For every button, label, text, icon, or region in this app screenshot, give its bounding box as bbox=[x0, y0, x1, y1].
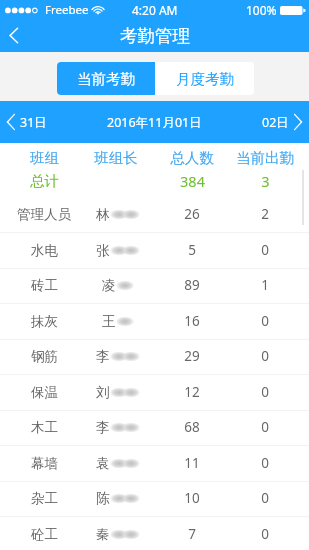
staticText: 管理人员 bbox=[17, 206, 71, 223]
staticText: 4:20 AM bbox=[132, 2, 178, 18]
staticText: 89 bbox=[184, 276, 200, 294]
staticText: 秦 bbox=[96, 526, 110, 543]
button[interactable] bbox=[0, 303, 309, 339]
button[interactable] bbox=[0, 410, 309, 446]
staticText: 考勤管理 bbox=[120, 25, 190, 47]
staticText: Freebee bbox=[45, 2, 89, 18]
staticText: 0 bbox=[261, 525, 269, 543]
staticText: 张 bbox=[96, 242, 110, 259]
staticText: 袁 bbox=[96, 455, 110, 472]
button[interactable]: 月度考勤 bbox=[155, 62, 254, 95]
staticText: 0 bbox=[261, 347, 269, 365]
button[interactable] bbox=[0, 516, 309, 550]
staticText: 11 bbox=[184, 454, 200, 472]
staticText: 抹灰 bbox=[31, 313, 58, 330]
staticText: 凌 bbox=[102, 277, 116, 294]
staticText: 2 bbox=[261, 205, 269, 223]
staticText: 0 bbox=[261, 418, 269, 436]
staticText: 钢筋 bbox=[31, 348, 58, 365]
staticText: 砖工 bbox=[31, 277, 58, 294]
staticText: 3 bbox=[261, 171, 270, 191]
button[interactable] bbox=[0, 374, 309, 410]
staticText: 16 bbox=[184, 312, 200, 330]
staticText: 0 bbox=[261, 383, 269, 401]
staticText: 26 bbox=[184, 205, 200, 223]
staticText: 陈 bbox=[96, 490, 110, 507]
staticText: 当前出勤 bbox=[236, 149, 294, 167]
staticText: 68 bbox=[184, 418, 200, 436]
button[interactable] bbox=[0, 268, 309, 304]
button[interactable] bbox=[0, 197, 309, 233]
staticText: 班组长 bbox=[94, 149, 138, 167]
staticText: 1 bbox=[261, 276, 269, 294]
staticText: 5 bbox=[188, 241, 196, 259]
staticText: 100% bbox=[246, 2, 277, 18]
staticText: 0 bbox=[261, 454, 269, 472]
staticText: 杂工 bbox=[31, 490, 58, 507]
staticText: 刘 bbox=[96, 384, 110, 401]
staticText: 7 bbox=[188, 525, 196, 543]
button[interactable] bbox=[0, 481, 309, 517]
staticText: 班组 bbox=[30, 149, 59, 167]
staticText: 29 bbox=[184, 347, 200, 365]
staticText: 384 bbox=[180, 171, 205, 191]
staticText: 保温 bbox=[31, 384, 58, 401]
staticText: 水电 bbox=[31, 242, 58, 259]
staticText: 总计 bbox=[30, 172, 59, 190]
staticText: 木工 bbox=[31, 419, 58, 436]
staticText: 李 bbox=[96, 419, 110, 436]
staticText: 砼工 bbox=[31, 526, 58, 543]
staticText: 王 bbox=[102, 313, 116, 330]
button[interactable]: 31日 bbox=[5, 113, 47, 131]
staticText: 0 bbox=[261, 312, 269, 330]
staticText: 月度考勤 bbox=[176, 70, 234, 88]
staticText: 0 bbox=[261, 241, 269, 259]
button[interactable]: 当前考勤 bbox=[57, 62, 155, 95]
button[interactable]: 02日 bbox=[262, 113, 304, 131]
staticText: 总人数 bbox=[170, 149, 214, 167]
staticText: 0 bbox=[261, 489, 269, 507]
button[interactable] bbox=[0, 232, 309, 268]
staticText: 当前考勤 bbox=[77, 70, 135, 88]
staticText: 幕墙 bbox=[31, 455, 58, 472]
staticText: 10 bbox=[184, 489, 200, 507]
staticText: 12 bbox=[184, 383, 200, 401]
staticText: 2016年11月01日 bbox=[107, 114, 202, 131]
button[interactable]: Back bbox=[0, 21, 30, 49]
button[interactable] bbox=[0, 339, 309, 375]
staticText: 31日 bbox=[20, 114, 47, 131]
button[interactable] bbox=[0, 445, 309, 481]
staticText: 02日 bbox=[262, 114, 289, 131]
staticText: 李 bbox=[96, 348, 110, 365]
staticText: 林 bbox=[96, 206, 110, 223]
